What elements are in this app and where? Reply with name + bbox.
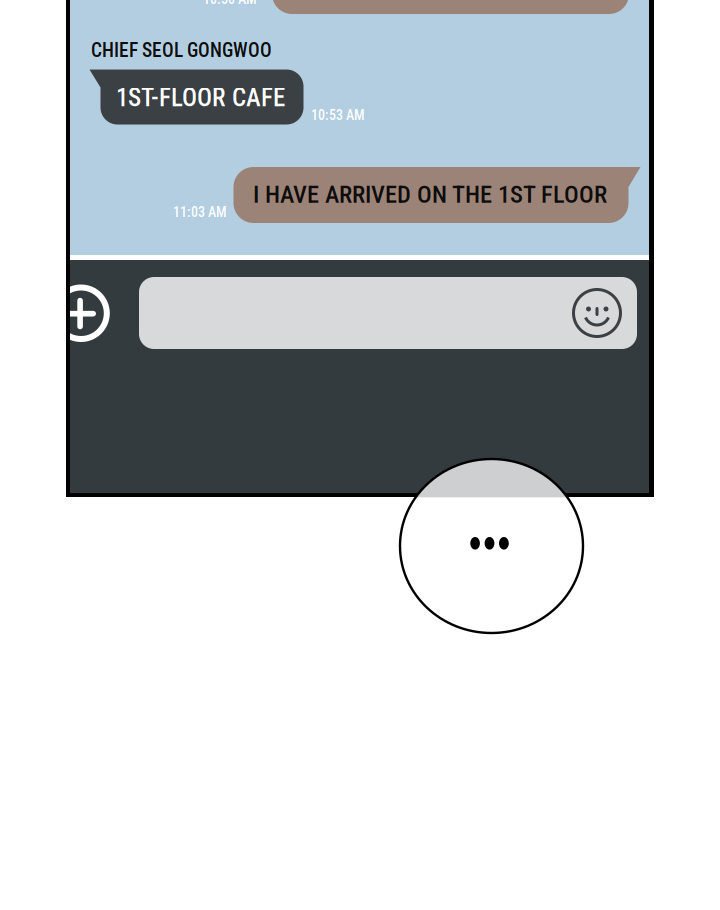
staticText: 1ST-FLOOR CAFE bbox=[116, 83, 285, 112]
staticText: 11:03 AM bbox=[173, 204, 227, 220]
staticText: CHIEF SEOL GONGWOO bbox=[91, 39, 272, 62]
button[interactable]: Emoji bbox=[569, 285, 625, 341]
button[interactable]: Add attachment bbox=[70, 260, 649, 493]
staticText: 10:53 AM bbox=[311, 107, 365, 123]
staticText: I HAVE ARRIVED ON THE 1ST FLOOR bbox=[253, 180, 607, 209]
staticText: 10:50 AM bbox=[203, 0, 257, 7]
